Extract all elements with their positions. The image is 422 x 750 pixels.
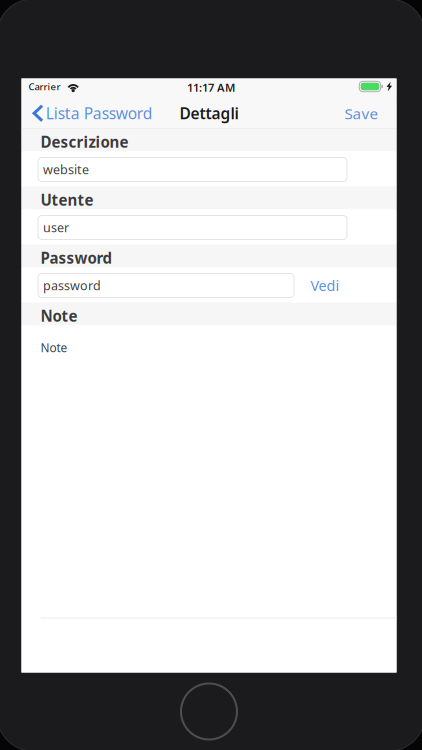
- staticText: password: [43, 277, 101, 294]
- staticText: Note: [40, 339, 67, 356]
- button[interactable]: password: [38, 273, 294, 297]
- staticText: Note: [40, 306, 77, 326]
- staticText: Password: [40, 248, 112, 268]
- button[interactable]: Vedi: [299, 271, 351, 299]
- button[interactable]: Save: [332, 98, 396, 128]
- staticText: Save: [344, 103, 378, 124]
- staticText: Lista Password: [46, 103, 153, 124]
- button[interactable]: website: [38, 157, 347, 181]
- staticText: Carrier: [28, 80, 60, 93]
- staticText: 11:17 AM: [187, 80, 235, 95]
- button[interactable]: user: [38, 215, 347, 239]
- staticText: user: [43, 219, 69, 236]
- staticText: Utente: [40, 190, 93, 210]
- button[interactable]: Lista Password: [21, 98, 161, 128]
- staticText: Dettagli: [179, 103, 238, 124]
- staticText: website: [43, 161, 89, 178]
- button[interactable]: Note: [21, 325, 396, 362]
- staticText: Vedi: [310, 276, 339, 295]
- staticText: Descrizione: [40, 132, 128, 152]
- button[interactable]: Home: [181, 683, 237, 739]
